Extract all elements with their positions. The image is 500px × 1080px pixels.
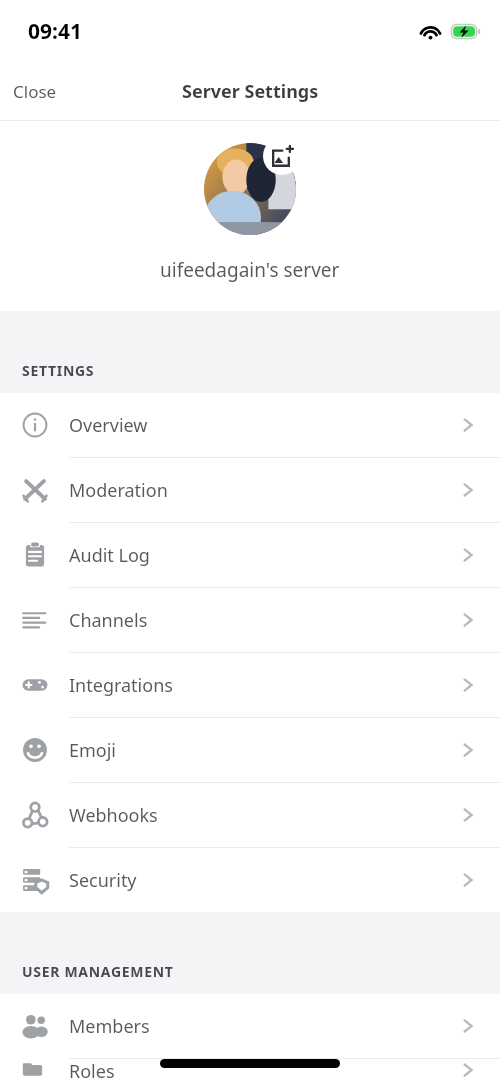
staticText: Webhooks (69, 803, 458, 828)
button[interactable]: Integrations (0, 653, 500, 718)
button[interactable]: Webhooks (0, 783, 500, 848)
staticText: Security (69, 868, 458, 893)
button[interactable]: Members (0, 994, 500, 1059)
staticText: Overview (69, 413, 458, 438)
staticText: Channels (69, 608, 458, 633)
staticText: Emoji (69, 738, 458, 763)
button[interactable]: Moderation (0, 458, 500, 523)
button[interactable]: Roles (0, 1059, 500, 1080)
staticText: Moderation (69, 478, 458, 503)
staticText: Members (69, 1014, 458, 1039)
button[interactable]: Security (0, 848, 500, 912)
staticText: Audit Log (69, 543, 458, 568)
staticText: 09:41 (28, 17, 82, 46)
button[interactable]: Channels (0, 588, 500, 653)
staticText: Server Settings (182, 79, 319, 104)
staticText: SETTINGS (22, 361, 95, 380)
staticText: Close (13, 80, 57, 103)
staticText: USER MANAGEMENT (22, 962, 174, 981)
button[interactable]: Overview (0, 393, 500, 458)
button[interactable]: Audit Log (0, 523, 500, 588)
button[interactable]: Close (0, 70, 70, 113)
button[interactable]: Change server icon (204, 143, 296, 235)
staticText: Roles (69, 1059, 458, 1080)
staticText: uifeedagain's server (160, 257, 340, 283)
staticText: Integrations (69, 673, 458, 698)
button[interactable]: Emoji (0, 718, 500, 783)
